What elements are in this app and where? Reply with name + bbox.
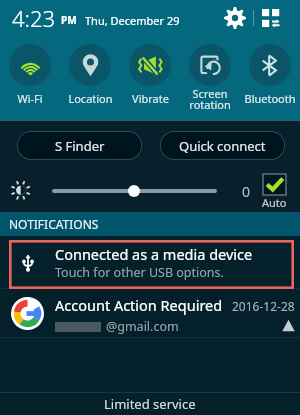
button[interactable]: Location <box>60 44 120 110</box>
button[interactable]: Screen rotation <box>180 44 240 110</box>
staticText: Thu, December 29 <box>85 13 180 28</box>
staticText: 2016-12-28 <box>232 298 295 314</box>
staticText: Vibrate <box>132 91 169 106</box>
staticText: Touch for other USB options. <box>55 264 224 281</box>
button[interactable]: Edit quick settings <box>257 3 287 33</box>
staticText: Quick connect <box>179 137 266 155</box>
staticText: Screen rotation <box>189 86 231 110</box>
button[interactable]: Bluetooth <box>240 44 300 110</box>
staticText: Wi-Fi <box>17 91 43 106</box>
button[interactable]: Account Action Required <box>0 289 300 337</box>
staticText: S Finder <box>55 137 105 155</box>
staticText: Location <box>68 91 113 106</box>
button[interactable]: Wi-Fi <box>0 44 60 110</box>
staticText: PM <box>61 13 77 27</box>
staticText: Account Action Required <box>55 295 223 315</box>
staticText: Connected as a media device <box>55 244 253 264</box>
button[interactable]: S Finder <box>17 131 142 160</box>
button[interactable]: Settings <box>220 3 250 33</box>
staticText: Limited service <box>104 395 196 413</box>
staticText: Bluetooth <box>244 91 296 106</box>
staticText: 4:23 <box>12 3 56 33</box>
button[interactable]: Connected as a media device <box>0 236 300 288</box>
button[interactable]: Auto brightness <box>261 174 287 210</box>
staticText: 0 <box>242 182 251 200</box>
staticText: @gmail.com <box>106 318 179 335</box>
staticText: Auto <box>262 195 287 210</box>
button[interactable]: Quick connect <box>160 131 285 160</box>
button[interactable]: Vibrate <box>120 44 180 110</box>
staticText: NOTIFICATIONS <box>9 216 99 232</box>
